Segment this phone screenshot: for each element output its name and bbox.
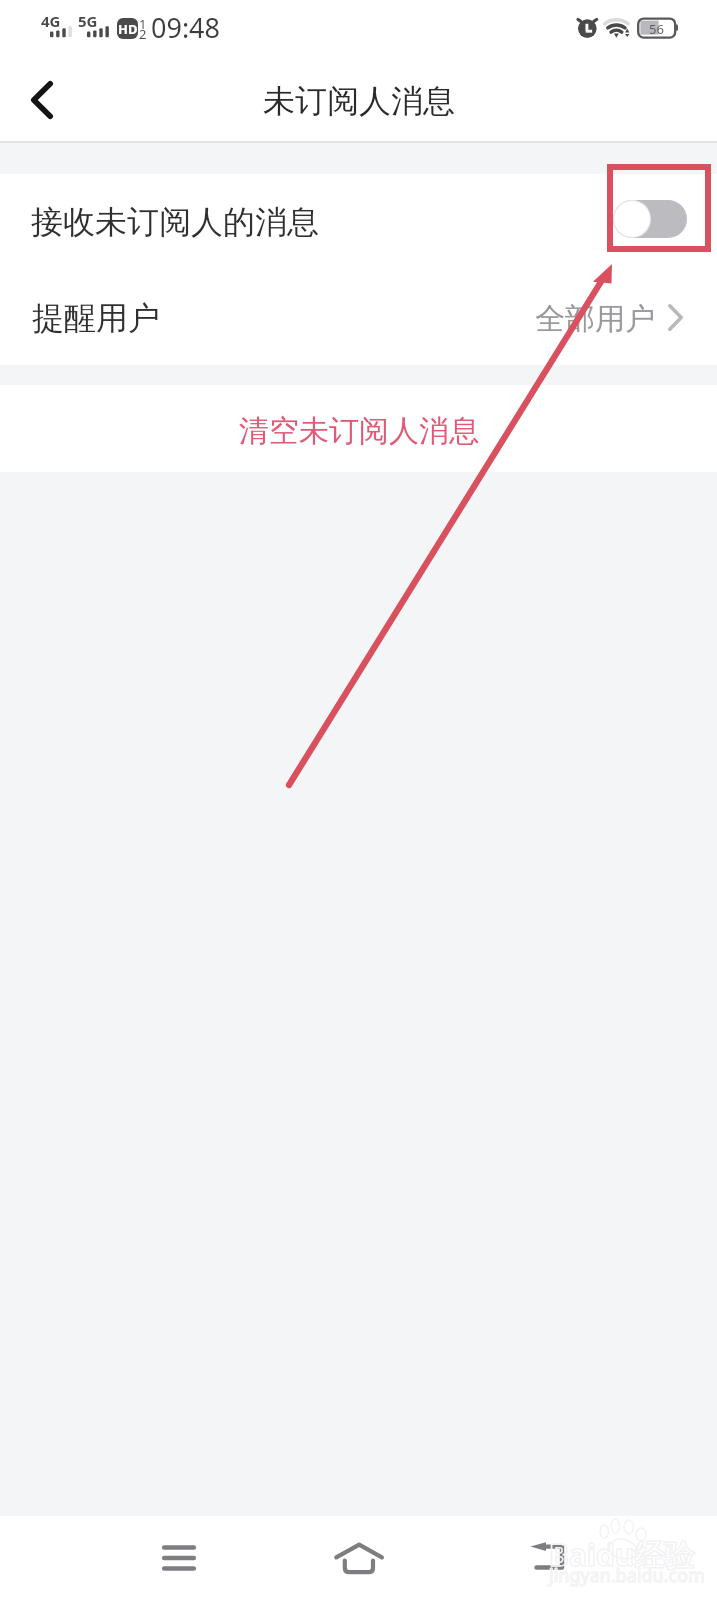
staticText: 清空未订阅人消息 [239,412,479,450]
staticText: 5G [78,11,98,31]
staticText: HD [118,20,138,38]
staticText: jingyan.baidu.com [549,1563,705,1588]
staticText: 1 [139,15,147,33]
button[interactable]: Menu [139,1516,219,1600]
staticText: 全部用户 [535,300,655,338]
button[interactable]: Receive unsubscribed messages toggle [613,200,687,238]
staticText: 09:48 [151,9,221,46]
staticText: Baidu经验 [549,1534,695,1575]
button[interactable]: Home [319,1516,399,1600]
button[interactable]: 接收未订阅人的消息 [0,174,717,270]
staticText: 2 [139,25,147,43]
staticText: 56 [649,20,664,38]
button[interactable]: 清空未订阅人消息 [0,385,717,472]
button[interactable]: Back [507,1516,587,1600]
staticText: 接收未订阅人的消息 [31,202,319,242]
staticText: 未订阅人消息 [263,81,455,121]
button[interactable]: Back [8,58,76,141]
staticText: 提醒用户 [32,298,160,338]
button[interactable]: 提醒用户 [0,270,717,365]
staticText: 4G [41,11,61,31]
